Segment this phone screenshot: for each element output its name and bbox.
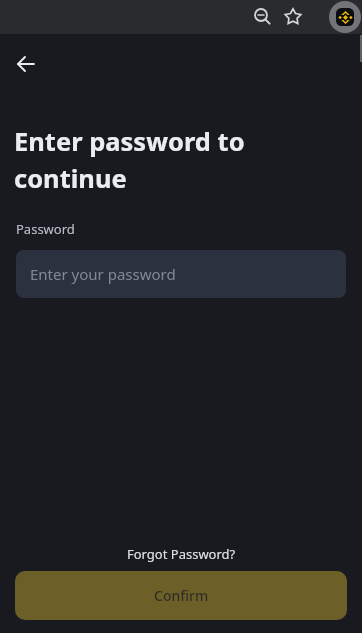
- staticText: Confirm: [154, 586, 209, 605]
- button[interactable]: [247, 0, 279, 34]
- staticText: Enter password to continue: [14, 124, 245, 196]
- button[interactable]: [329, 1, 361, 33]
- staticText: Forgot Password?: [127, 545, 236, 563]
- staticText: Password: [16, 220, 75, 238]
- button[interactable]: Forgot Password?: [123, 541, 240, 567]
- button[interactable]: Enter your password: [16, 250, 346, 298]
- button[interactable]: [10, 48, 42, 80]
- button[interactable]: Confirm: [15, 571, 347, 620]
- staticText: Enter your password: [30, 264, 176, 284]
- button[interactable]: [277, 0, 309, 34]
